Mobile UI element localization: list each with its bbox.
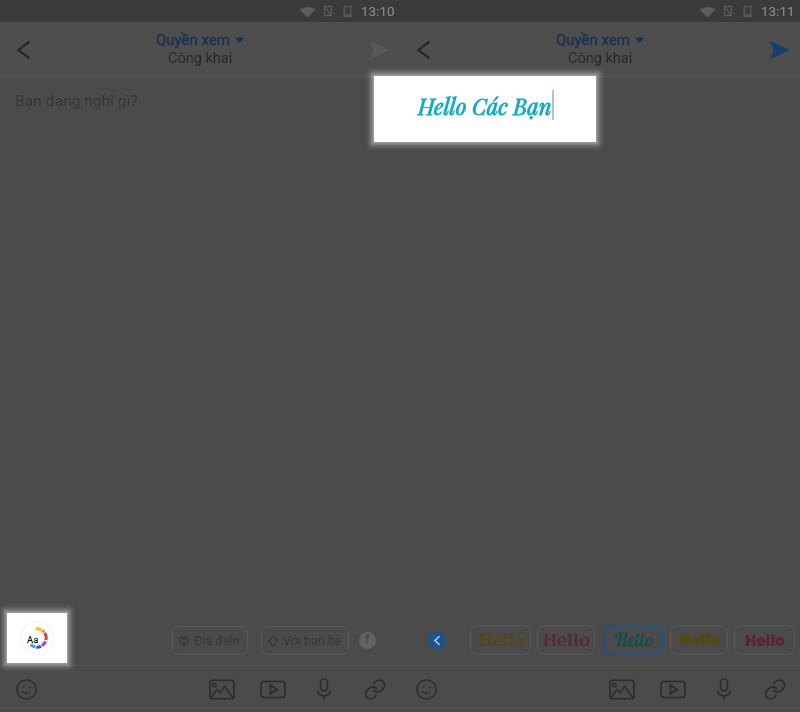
button[interactable]: Video	[256, 672, 290, 706]
staticText: Hello	[614, 628, 654, 652]
button[interactable]: Send	[362, 33, 396, 67]
button[interactable]: Audience	[359, 632, 376, 649]
button[interactable]: Emoji	[9, 672, 43, 706]
button[interactable]: Với bạn bè	[261, 626, 349, 655]
button[interactable]: Back	[7, 34, 39, 66]
staticText: Bạn đang nghĩ gì?	[15, 92, 138, 110]
button[interactable]: Hello	[670, 625, 728, 655]
button[interactable]: Back	[407, 34, 439, 66]
button[interactable]: Send	[762, 33, 796, 67]
button[interactable]: Địa điểm	[172, 626, 248, 655]
staticText: Công khai	[168, 50, 233, 67]
staticText: Với bạn bè	[283, 633, 342, 648]
button[interactable]: Photo	[205, 672, 239, 706]
button[interactable]: Emoji	[409, 672, 443, 706]
button[interactable]: Microphone	[707, 672, 741, 706]
button[interactable]: Link	[358, 672, 392, 706]
staticText: Địa điểm	[194, 633, 241, 648]
button[interactable]: Photo	[605, 672, 639, 706]
staticText: Hello	[478, 631, 524, 650]
button[interactable]: Hello	[604, 625, 663, 655]
staticText: f	[365, 633, 370, 647]
button[interactable]: Text style	[19, 620, 55, 656]
button[interactable]: Hello	[734, 625, 795, 655]
staticText: Quyền xem	[556, 31, 630, 49]
staticText: 13:11	[761, 3, 795, 19]
staticText: Hello	[679, 631, 720, 650]
staticText: Hello Các Bạn	[418, 91, 552, 120]
staticText: Hello	[745, 630, 785, 651]
staticText: 13:10	[361, 3, 395, 19]
button[interactable]: Link	[758, 672, 792, 706]
staticText: Hello	[543, 626, 590, 655]
button[interactable]: Hello	[470, 625, 531, 655]
button[interactable]: Video	[656, 672, 690, 706]
button[interactable]: Hello	[537, 625, 595, 655]
button[interactable]: Collapse	[428, 631, 446, 649]
staticText: Công khai	[568, 50, 633, 67]
staticText: Quyền xem	[156, 31, 230, 49]
staticText: Aa	[27, 634, 39, 645]
button[interactable]: Microphone	[307, 672, 341, 706]
